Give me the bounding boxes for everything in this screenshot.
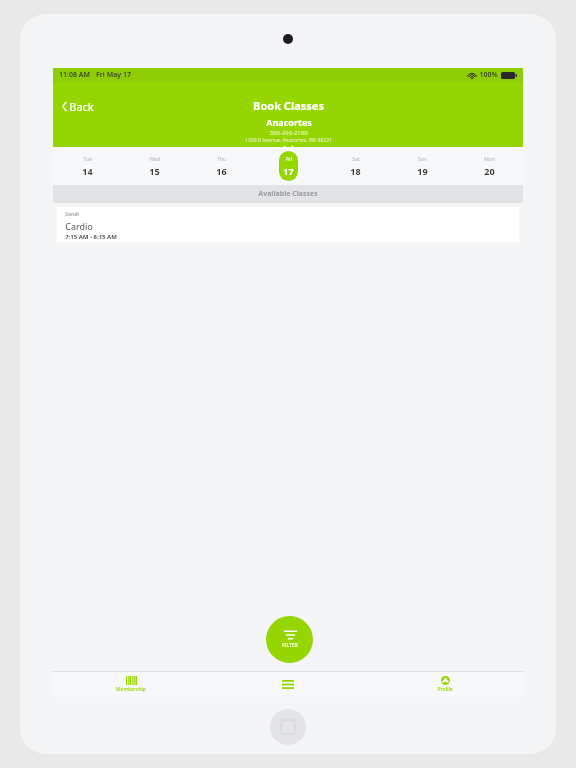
- button[interactable]: Sandi: [57, 207, 519, 242]
- staticText: Sat: [352, 156, 360, 163]
- staticText: 17: [283, 165, 294, 177]
- button[interactable]: Mon: [456, 147, 523, 185]
- staticText: 7:15 AM - 8:15 AM: [65, 233, 117, 241]
- button[interactable]: Fri: [255, 147, 322, 185]
- button[interactable]: Filter: [266, 616, 313, 663]
- staticText: 11:08 AM: [59, 70, 90, 80]
- staticText: Back: [69, 99, 94, 114]
- staticText: Sun: [418, 156, 427, 163]
- staticText: 20: [484, 165, 495, 177]
- staticText: Profile: [437, 686, 453, 693]
- button[interactable]: Thu: [188, 147, 255, 185]
- staticText: Fri May 17: [96, 70, 131, 80]
- staticText: Thu: [217, 156, 226, 163]
- staticText: Anacortes: [266, 116, 312, 128]
- staticText: Membership: [116, 686, 146, 693]
- button[interactable]: Wed: [121, 147, 188, 185]
- staticText: Sandi: [65, 211, 79, 218]
- staticText: FILTER: [282, 642, 298, 649]
- staticText: 19: [417, 165, 428, 177]
- staticText: 360-299-2180: [269, 129, 308, 137]
- staticText: Mon: [484, 156, 495, 163]
- button[interactable]: Profile: [366, 672, 523, 697]
- staticText: Cardio: [65, 220, 93, 232]
- staticText: 16: [216, 165, 227, 177]
- staticText: Book Classes: [253, 98, 324, 113]
- staticText: Tue: [83, 156, 92, 163]
- button[interactable]: Tue: [53, 147, 121, 185]
- staticText: Fri: [286, 156, 292, 163]
- button[interactable]: Sat: [322, 147, 389, 185]
- staticText: 100%: [479, 70, 498, 80]
- staticText: 15: [149, 165, 160, 177]
- staticText: Wed: [149, 156, 160, 163]
- button[interactable]: Membership: [53, 672, 209, 697]
- button[interactable]: Sun: [389, 147, 456, 185]
- button[interactable]: Back: [59, 97, 97, 116]
- staticText: 18: [350, 165, 361, 177]
- staticText: Available Classes: [258, 189, 318, 199]
- staticText: 1509 R Avenue, Anacortes, WA 98221: [245, 137, 332, 144]
- button[interactable]: Menu: [209, 672, 366, 697]
- button[interactable]: Anacortes: [245, 116, 332, 151]
- staticText: 14: [82, 165, 93, 177]
